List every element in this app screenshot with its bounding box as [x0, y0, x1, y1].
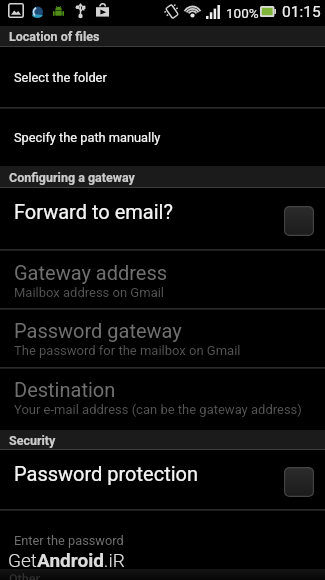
staticText: Forward to email?	[14, 200, 173, 223]
staticText: The password for the mailbox on Gmail	[14, 343, 241, 358]
staticText: Mailbox address on Gmail	[14, 285, 165, 300]
other: Password protection	[284, 467, 314, 497]
button[interactable]: Password protection	[0, 450, 325, 509]
staticText: Destination	[14, 378, 116, 401]
button[interactable]: Enter the password	[0, 511, 325, 569]
button[interactable]: Password gateway	[0, 310, 325, 366]
staticText: 100%	[226, 5, 259, 21]
staticText: GetAndroid.iR	[8, 549, 125, 571]
staticText: Password protection	[14, 462, 198, 485]
button[interactable]: Destination	[0, 369, 325, 429]
button[interactable]: Specify the path manually	[0, 109, 325, 166]
staticText: Configuring a gateway	[9, 170, 135, 185]
staticText: 01:15	[282, 3, 321, 21]
staticText: Location of files	[9, 29, 100, 44]
staticText: Gateway address	[14, 261, 168, 284]
staticText: Specify the path manually	[14, 130, 161, 145]
button[interactable]: Gateway address	[0, 251, 325, 307]
staticText: Other	[9, 571, 41, 580]
staticText: Enter the password	[14, 533, 124, 548]
button[interactable]: Select the folder	[0, 47, 325, 107]
staticText: Security	[9, 433, 56, 448]
staticText: Your e-mail address (can be the gateway …	[14, 402, 302, 417]
other: Forward to email?	[284, 206, 314, 236]
staticText: Select the folder	[14, 70, 107, 85]
staticText: Password gateway	[14, 319, 182, 342]
button[interactable]: Forward to email?	[0, 188, 325, 249]
